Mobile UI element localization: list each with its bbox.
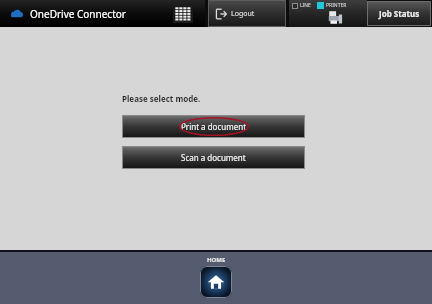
button[interactable]: Logout	[208, 0, 286, 27]
staticText: PRINTER	[326, 2, 347, 9]
staticText: OneDrive Connector	[30, 7, 126, 21]
button[interactable]: Scan a document	[122, 146, 305, 169]
button[interactable]: Home	[200, 266, 232, 298]
staticText: Scan a document	[181, 152, 246, 163]
staticText: Logout	[231, 9, 255, 19]
staticText: Please select mode.	[122, 93, 201, 104]
button[interactable]: LINE	[289, 0, 367, 27]
staticText: LINE	[300, 2, 311, 9]
staticText: Job Status	[379, 8, 420, 19]
staticText: Print a document	[181, 121, 247, 132]
button[interactable]: Job Status	[367, 1, 431, 26]
button[interactable]: OneDrive Connector	[0, 0, 205, 27]
staticText: HOME	[207, 256, 226, 264]
button[interactable]: Print a document	[122, 115, 305, 138]
